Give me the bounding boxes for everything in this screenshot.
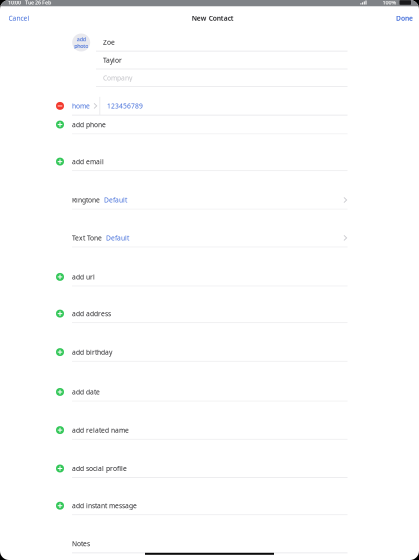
staticText: add address	[72, 309, 111, 318]
button[interactable]: Ringtone	[0, 191, 419, 210]
button[interactable]: Done	[396, 14, 413, 23]
staticText: home	[72, 101, 90, 110]
button[interactable]: add address	[0, 305, 419, 323]
staticText: Cancel	[8, 14, 29, 23]
staticText: Tue 26 Feb	[25, 0, 51, 6]
staticText: Default	[104, 196, 127, 204]
staticText: photo	[74, 42, 88, 49]
staticText: 10:00	[8, 0, 21, 6]
staticText: Company	[103, 73, 132, 82]
staticText: 100%	[382, 0, 396, 6]
staticText: Taylor	[103, 56, 122, 64]
staticText: New Contact	[192, 14, 234, 23]
staticText: Default	[106, 233, 129, 242]
button[interactable]: Text Tone	[0, 229, 419, 247]
staticText: Text Tone	[72, 233, 102, 242]
button[interactable]: add birthday	[0, 343, 419, 362]
button[interactable]: Cancel	[8, 14, 29, 23]
button[interactable]: add social profile	[0, 460, 419, 478]
button[interactable]: add url	[0, 268, 419, 286]
button[interactable]: add phone	[0, 115, 419, 134]
staticText: add email	[72, 157, 104, 166]
staticText: add social profile	[72, 464, 127, 473]
button[interactable]: add email	[0, 153, 419, 171]
staticText: Ringtone	[72, 196, 100, 204]
staticText: Zoe	[103, 38, 115, 47]
staticText: add birthday	[72, 348, 112, 357]
staticText: add phone	[72, 120, 106, 129]
button[interactable]: home	[0, 97, 419, 115]
button[interactable]: add instant message	[0, 497, 419, 515]
button[interactable]: Add photo	[72, 33, 90, 51]
staticText: add instant message	[72, 501, 137, 510]
staticText: Notes	[72, 539, 90, 548]
staticText: 123456789	[107, 101, 143, 110]
staticText: add date	[72, 387, 100, 396]
staticText: add	[77, 36, 86, 43]
button[interactable]: add related name	[0, 421, 419, 440]
staticText: Done	[396, 14, 413, 23]
staticText: add url	[72, 272, 95, 281]
button[interactable]: add date	[0, 383, 419, 401]
staticText: add related name	[72, 426, 129, 435]
